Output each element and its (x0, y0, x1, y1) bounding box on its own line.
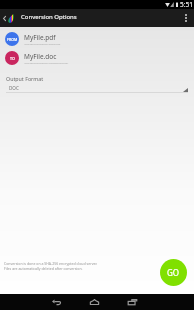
staticText: Conversion Options (21, 13, 77, 21)
staticText: Output Format (6, 75, 44, 82)
staticText: DOC (9, 85, 19, 91)
button[interactable]: FROM (0, 32, 194, 46)
button[interactable]: GO (160, 259, 187, 286)
staticText: /storage/emulated/0/Download (24, 42, 61, 45)
staticText: TO (10, 56, 15, 61)
staticText: GO (167, 267, 180, 278)
button[interactable]: DOC (6, 85, 188, 93)
staticText: /storage/emulated/0/TheFileConverter (24, 61, 69, 64)
staticText: MyFile.doc (24, 52, 57, 61)
staticText: FROM (7, 37, 18, 42)
button[interactable]: TO (0, 51, 194, 65)
button[interactable]: Recent apps (124, 294, 141, 310)
staticText: MyFile.pdf (24, 33, 56, 42)
button[interactable]: Back (48, 294, 65, 310)
staticText: 5:51 (180, 0, 193, 9)
button[interactable]: Home (86, 294, 103, 310)
button[interactable]: Navigate up (0, 9, 8, 27)
button[interactable]: More options (178, 9, 194, 27)
staticText: Conversion is done on a SHA-256 encrypte… (4, 261, 98, 271)
